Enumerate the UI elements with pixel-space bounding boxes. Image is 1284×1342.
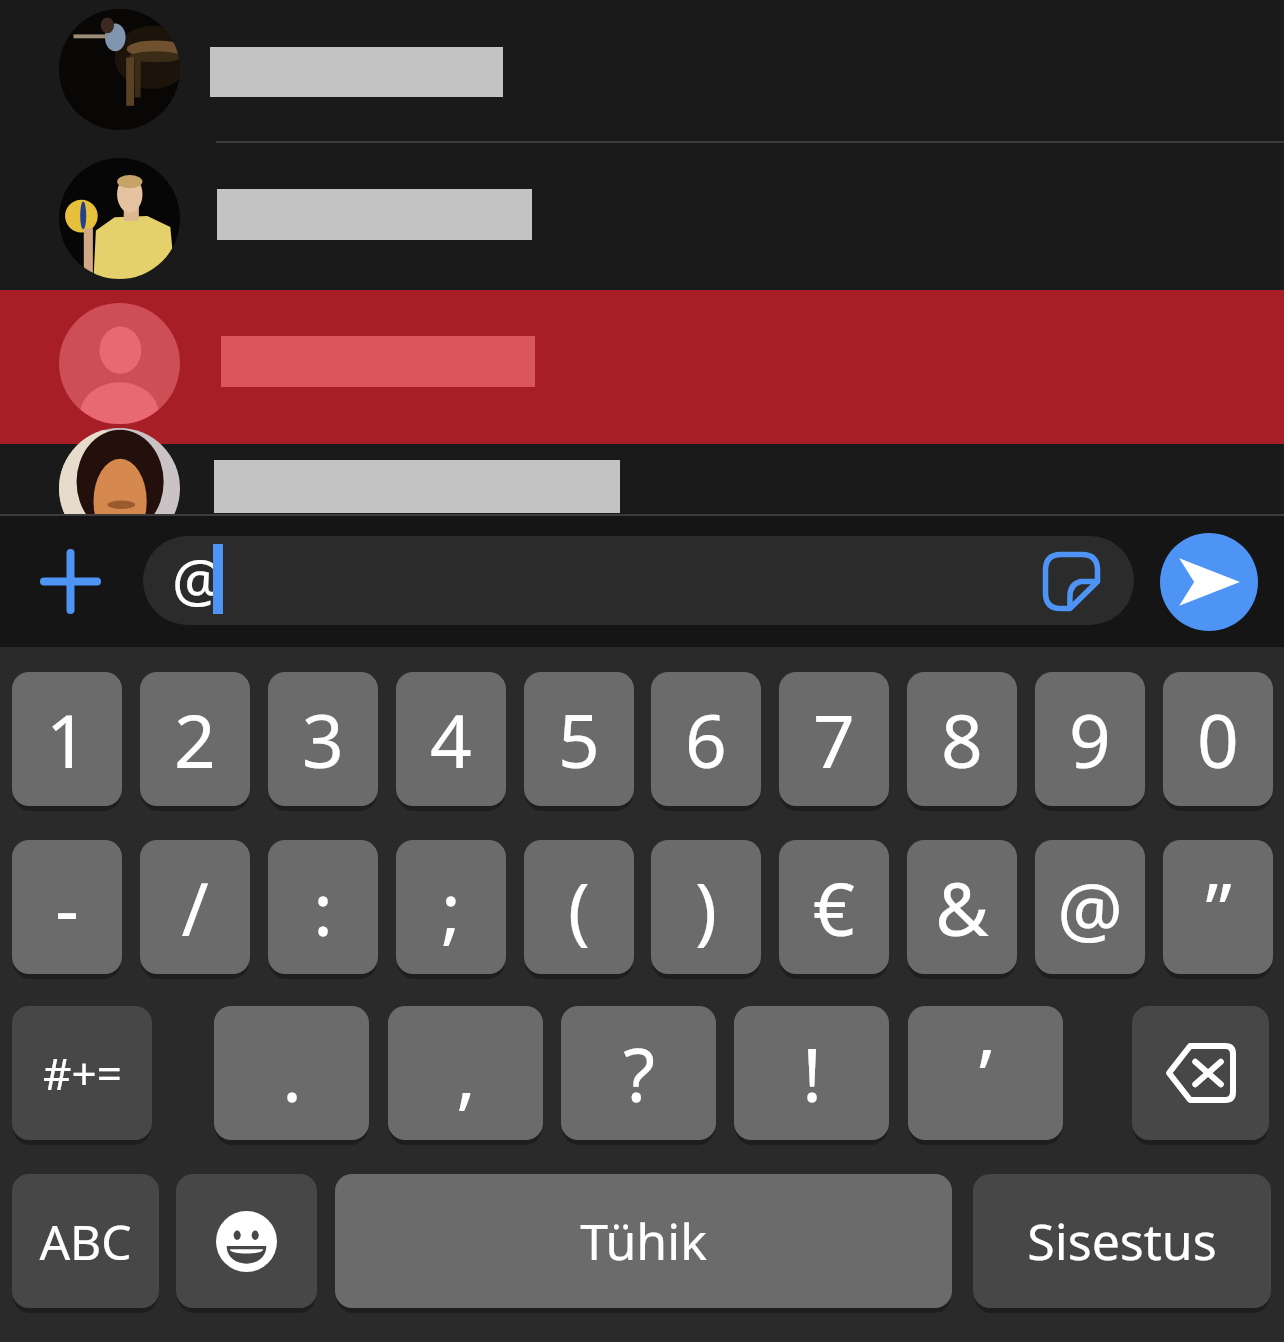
- staticText: ABC: [39, 1209, 132, 1274]
- button[interactable]: [0, 444, 1284, 517]
- button[interactable]: Tühik: [335, 1174, 952, 1308]
- button[interactable]: 9: [1035, 672, 1145, 806]
- button[interactable]: Stickers: [1034, 544, 1108, 618]
- button[interactable]: /: [140, 840, 250, 974]
- button[interactable]: ;: [396, 840, 506, 974]
- staticText: ,: [456, 1024, 476, 1123]
- staticText: &: [935, 858, 989, 957]
- button[interactable]: ABC: [12, 1174, 159, 1308]
- button[interactable]: ”: [1163, 840, 1273, 974]
- staticText: ’: [979, 1024, 992, 1123]
- button[interactable]: 8: [907, 672, 1017, 806]
- staticText: @: [1057, 858, 1123, 957]
- button[interactable]: 3: [268, 672, 378, 806]
- staticText: ”: [1205, 858, 1232, 957]
- staticText: 1: [46, 690, 88, 789]
- staticText: €: [813, 858, 855, 957]
- staticText: .: [282, 1024, 302, 1123]
- button[interactable]: ): [651, 840, 761, 974]
- button[interactable]: 6: [651, 672, 761, 806]
- button[interactable]: !: [734, 1006, 889, 1140]
- staticText: 0: [1197, 690, 1239, 789]
- staticText: ?: [623, 1024, 655, 1123]
- button[interactable]: -: [12, 840, 122, 974]
- staticText: Sisestus: [1027, 1207, 1217, 1275]
- staticText: (: [568, 858, 590, 957]
- button[interactable]: &: [907, 840, 1017, 974]
- staticText: 3: [302, 690, 344, 789]
- button[interactable]: :: [268, 840, 378, 974]
- button[interactable]: 5: [524, 672, 634, 806]
- staticText: ): [695, 858, 717, 957]
- button[interactable]: €: [779, 840, 889, 974]
- button[interactable]: #+=: [12, 1006, 152, 1140]
- button[interactable]: 4: [396, 672, 506, 806]
- button[interactable]: 7: [779, 672, 889, 806]
- button[interactable]: 1: [12, 672, 122, 806]
- staticText: !: [802, 1024, 822, 1123]
- staticText: 2: [174, 690, 216, 789]
- staticText: /: [181, 858, 209, 957]
- button[interactable]: Backspace: [1132, 1006, 1269, 1140]
- button[interactable]: [0, 290, 1284, 445]
- staticText: Tühik: [580, 1207, 707, 1275]
- button[interactable]: ,: [388, 1006, 543, 1140]
- button[interactable]: 0: [1163, 672, 1273, 806]
- button[interactable]: 2: [140, 672, 250, 806]
- button[interactable]: (: [524, 840, 634, 974]
- button[interactable]: Attach: [30, 541, 110, 621]
- staticText: -: [55, 858, 79, 957]
- staticText: #+=: [43, 1043, 122, 1103]
- button[interactable]: [0, 142, 1284, 290]
- staticText: 6: [685, 690, 727, 789]
- button[interactable]: ’: [908, 1006, 1063, 1140]
- button[interactable]: Sisestus: [973, 1174, 1271, 1308]
- staticText: 4: [430, 690, 472, 789]
- staticText: :: [313, 858, 333, 957]
- staticText: 7: [813, 690, 855, 789]
- staticText: 5: [558, 690, 600, 789]
- staticText: 8: [941, 690, 983, 789]
- button[interactable]: Emoji: [176, 1174, 317, 1308]
- staticText: @: [172, 539, 226, 619]
- button[interactable]: @: [143, 536, 1134, 625]
- button[interactable]: Send: [1160, 533, 1258, 631]
- button[interactable]: .: [214, 1006, 369, 1140]
- button[interactable]: @: [1035, 840, 1145, 974]
- staticText: ;: [441, 858, 461, 957]
- button[interactable]: ?: [561, 1006, 716, 1140]
- staticText: 9: [1069, 690, 1111, 789]
- button[interactable]: [0, 0, 1284, 142]
